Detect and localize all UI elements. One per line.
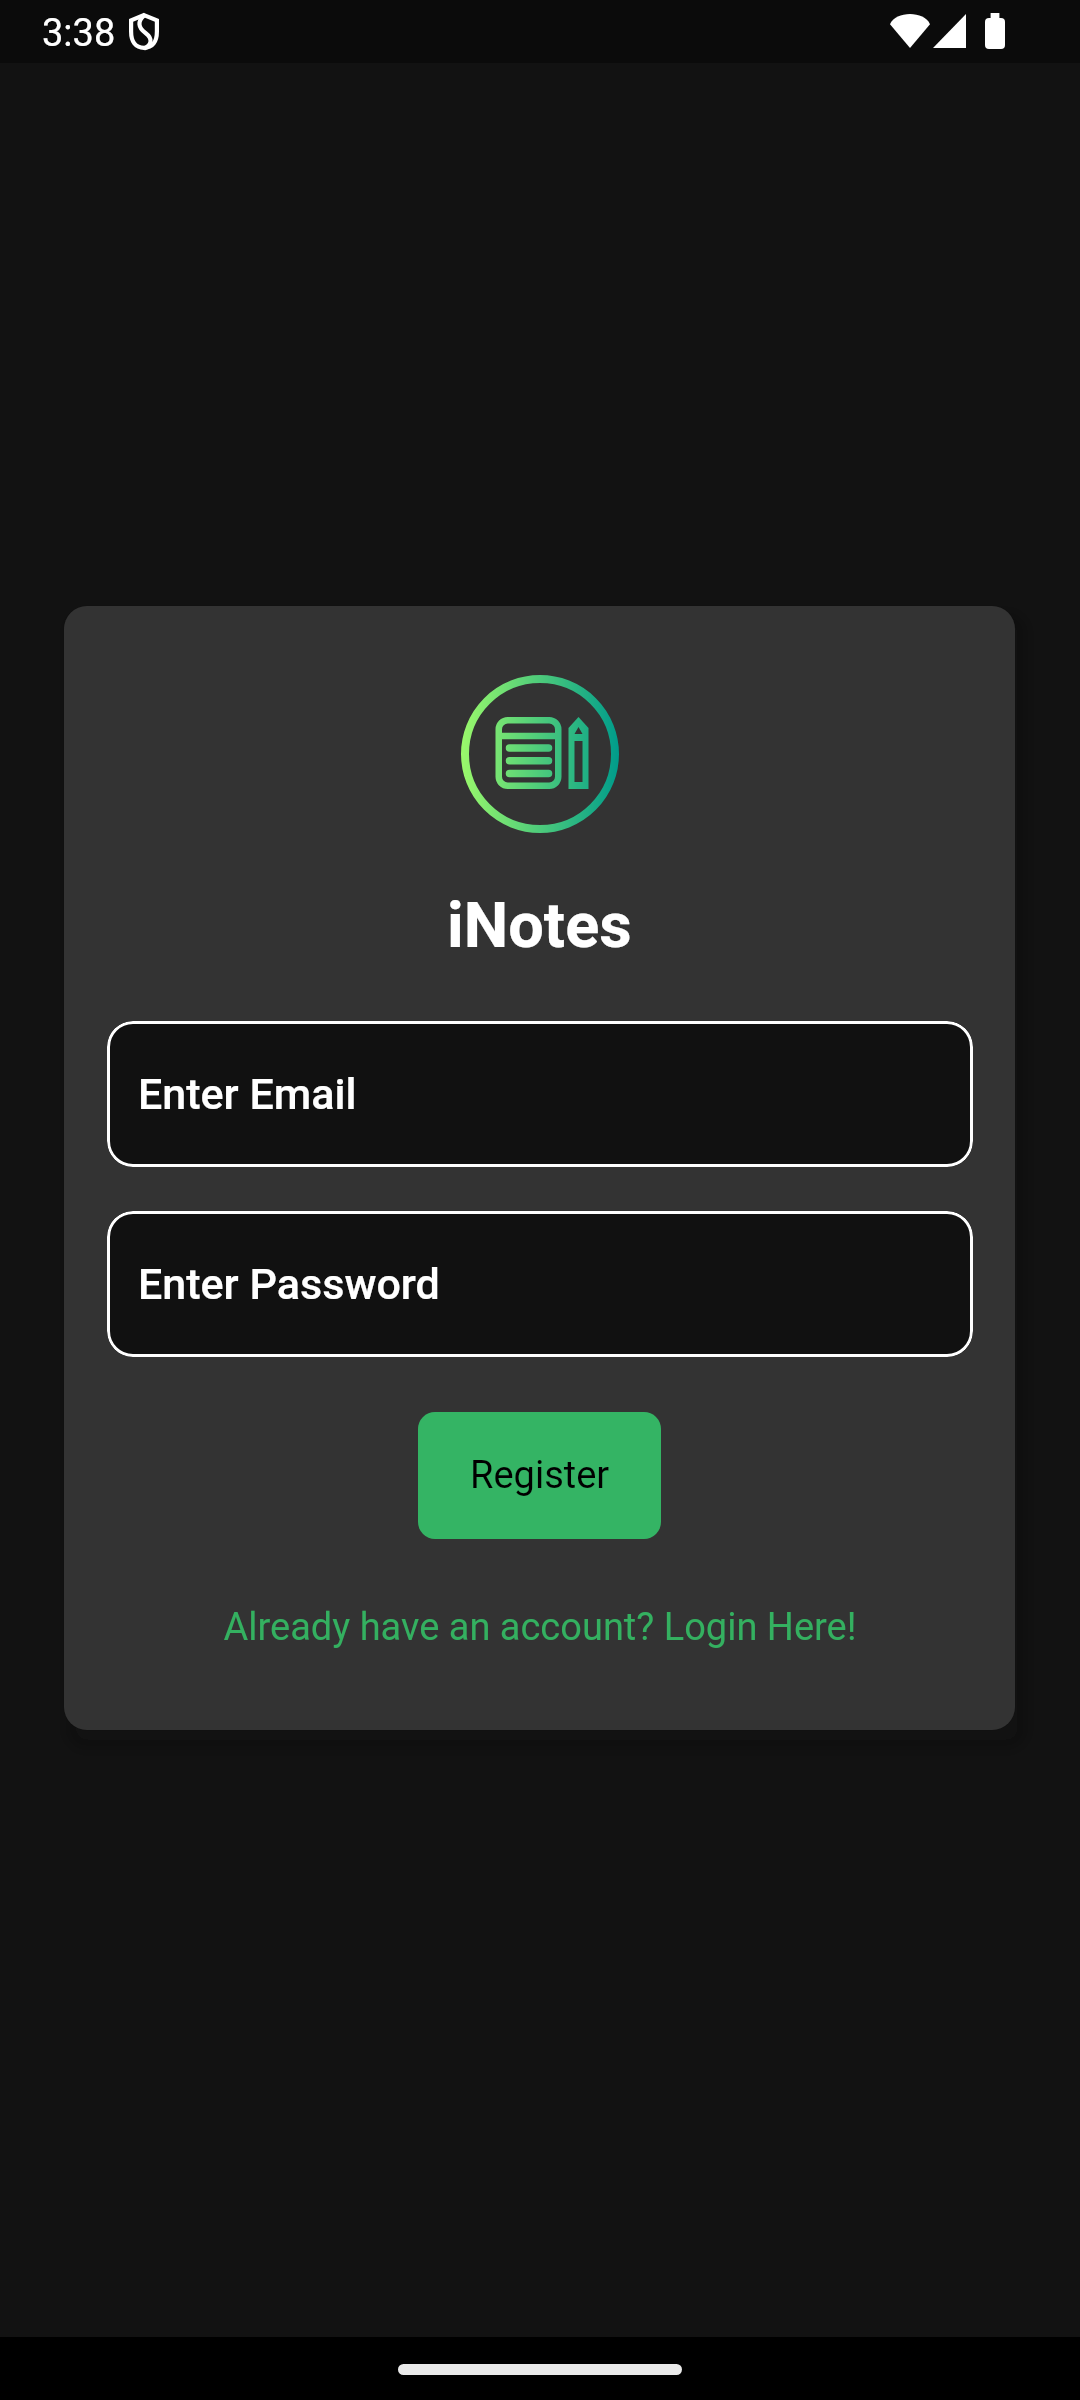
staticText: Already have an account? Login Here! [223, 1605, 857, 1650]
other: Wi-Fi [890, 14, 930, 48]
button[interactable]: Already have an account? Login Here! [64, 1597, 1015, 1657]
button[interactable]: Enter Password [107, 1211, 973, 1357]
staticText: 3:38 [42, 11, 116, 56]
button[interactable]: Enter Email [107, 1021, 973, 1167]
staticText: iNotes [447, 889, 632, 963]
other: Mobile signal [933, 14, 966, 48]
button[interactable]: Register [418, 1412, 661, 1539]
staticText: Enter Email [138, 1069, 357, 1119]
staticText: Register [470, 1453, 610, 1498]
staticText: Enter Password [138, 1259, 440, 1309]
other: Home [398, 2364, 682, 2375]
other: Privacy indicator [129, 13, 159, 50]
other: Battery [985, 13, 1005, 49]
